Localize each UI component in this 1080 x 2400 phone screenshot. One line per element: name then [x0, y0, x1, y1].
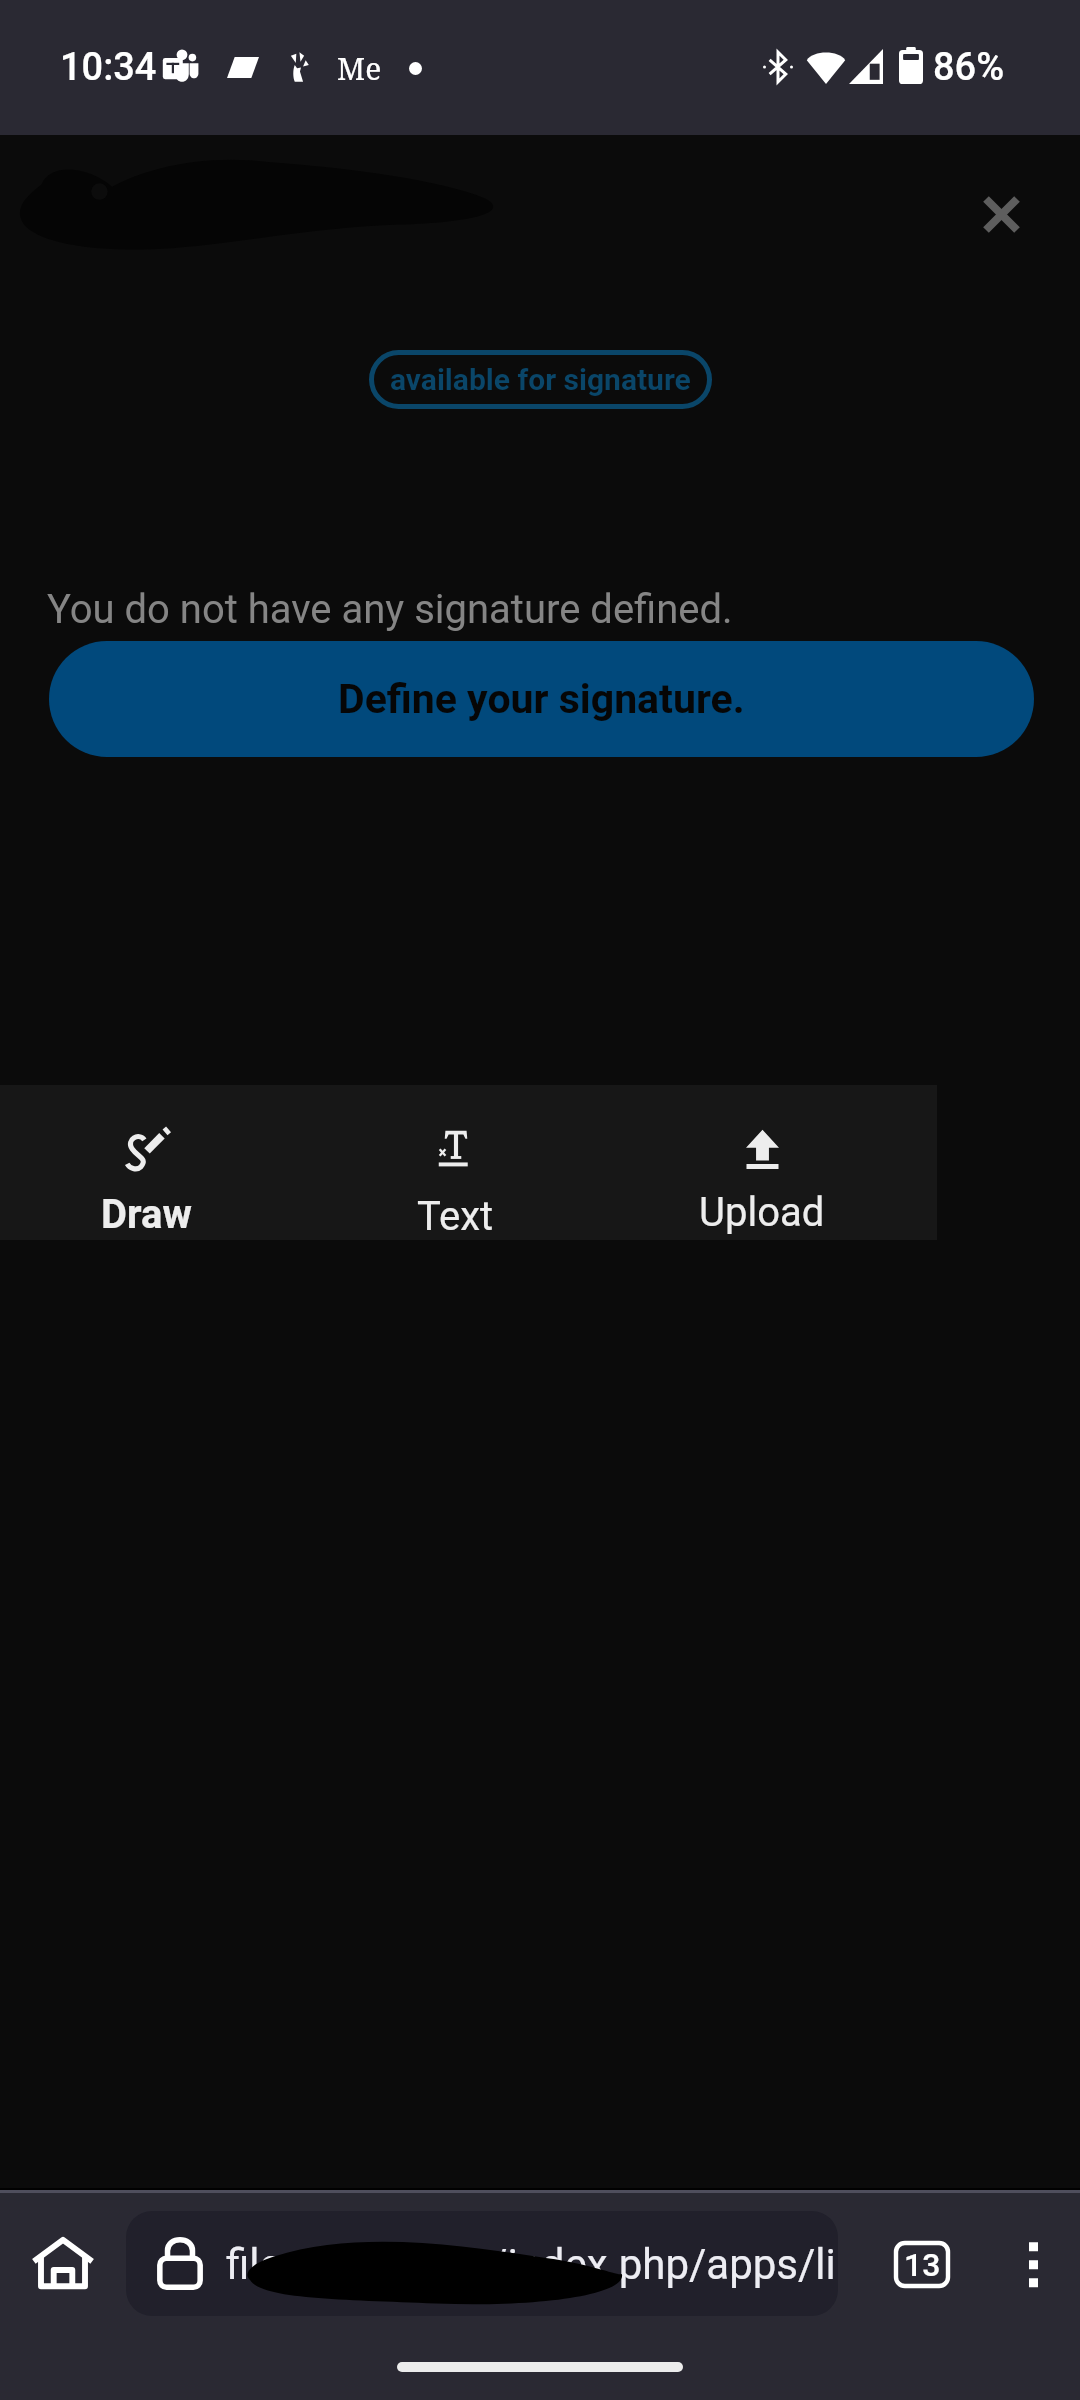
staticText: files.cloud.xyz/index.php/apps/lib [226, 2240, 838, 2289]
button[interactable]: Home [20, 2220, 106, 2306]
staticText: 86% [933, 45, 1005, 90]
staticText: Upload [699, 1189, 825, 1236]
staticText: available for signature [390, 362, 691, 397]
button[interactable]: Define your signature. [49, 641, 1034, 757]
button[interactable]: Text [305, 1085, 605, 1240]
button[interactable]: Tabs [878, 2220, 966, 2308]
staticText: You do not have any signature defined. [47, 586, 733, 633]
button[interactable]: More options [994, 2223, 1072, 2301]
staticText: Draw [101, 1191, 192, 1238]
button[interactable]: files.cloud.xyz/index.php/apps/lib [126, 2211, 838, 2316]
staticText: Me [337, 48, 382, 89]
button[interactable]: available for signature [369, 350, 712, 409]
staticText: Text [417, 1193, 494, 1240]
button[interactable]: Close [955, 168, 1047, 260]
staticText: 13 [904, 2246, 941, 2284]
staticText: 10:34 [60, 45, 157, 90]
staticText: Define your signature. [338, 675, 745, 723]
button[interactable]: Draw [0, 1085, 296, 1240]
button[interactable]: Upload [612, 1085, 912, 1240]
